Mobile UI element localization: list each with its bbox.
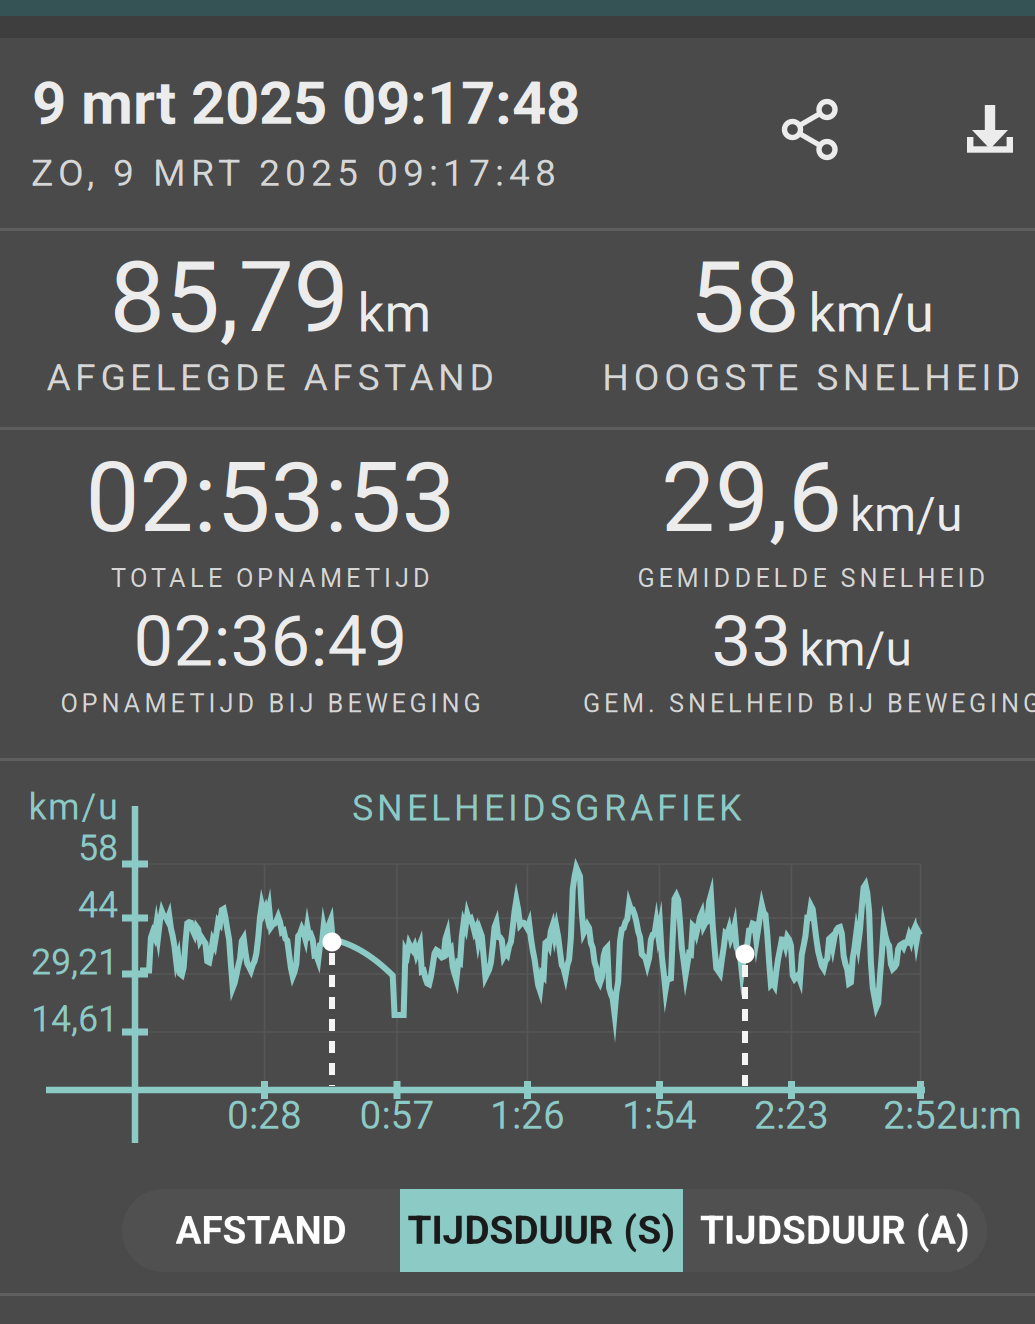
button[interactable]: TIJDSDUUR (S) <box>400 1189 683 1272</box>
staticText: 29,6 <box>661 442 842 554</box>
staticText: 0:57 <box>359 1093 434 1138</box>
staticText: TOTALE OPNAMETIJD <box>111 563 430 593</box>
staticText: 2:52 <box>883 1093 958 1138</box>
staticText: 58 <box>78 827 118 869</box>
staticText: 02:36:49 <box>133 600 407 683</box>
staticText: 0:28 <box>227 1093 302 1138</box>
staticText: TIJDSDUUR (S) <box>407 1208 675 1253</box>
staticText: 1:54 <box>622 1093 697 1138</box>
staticText: km/u <box>850 486 962 543</box>
staticText: km/u <box>808 282 933 345</box>
staticText: 2:23 <box>754 1093 829 1138</box>
staticText: 1:26 <box>490 1093 565 1138</box>
staticText: AFSTAND <box>175 1208 346 1253</box>
staticText: AFGELEGDE AFSTAND <box>46 356 494 399</box>
staticText: ZO, 9 MRT 2025 09:17:48 <box>31 151 556 195</box>
staticText: km <box>357 282 431 345</box>
button[interactable]: AFSTAND <box>122 1189 400 1272</box>
staticText: km/u <box>799 621 911 677</box>
staticText: OPNAMETIJD BIJ BEWEGING <box>60 689 480 718</box>
staticText: GEMIDDELDE SNELHEID <box>637 563 985 593</box>
staticText: km/u <box>28 786 118 828</box>
staticText: 33 <box>711 600 791 683</box>
staticText: SNELHEIDSGRAFIEK <box>352 787 742 829</box>
staticText: 85,79 <box>110 240 349 356</box>
button[interactable]: TIJDSDUUR (A) <box>683 1189 987 1272</box>
staticText: 14,61 <box>31 998 118 1040</box>
staticText: 9 mrt 2025 09:17:48 <box>32 68 580 138</box>
staticText: TIJDSDUUR (A) <box>700 1208 970 1253</box>
button[interactable]: Download <box>967 105 1014 153</box>
staticText: u:m <box>958 1093 1022 1138</box>
staticText: 29,21 <box>31 941 118 983</box>
staticText: GEM. SNELHEID BIJ BEWEGING <box>583 689 1035 718</box>
staticText: 44 <box>78 884 118 926</box>
staticText: HOOGSTE SNELHEID <box>602 356 1021 399</box>
staticText: 02:53:53 <box>85 442 455 554</box>
button[interactable]: Share <box>784 101 836 158</box>
staticText: 58 <box>690 240 800 356</box>
